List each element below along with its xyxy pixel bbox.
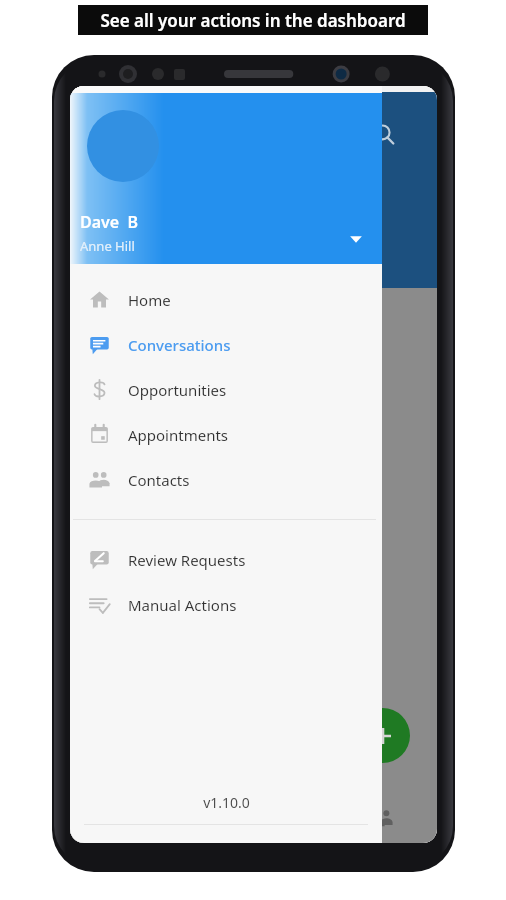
button[interactable]: Appointments [70, 412, 382, 457]
staticText: Opportunities [128, 380, 227, 400]
staticText: Review Requests [128, 550, 246, 570]
button[interactable]: Manual Actions [70, 582, 382, 627]
button[interactable]: Contacts [70, 457, 382, 502]
button[interactable]: Conversations [70, 322, 382, 367]
staticText: Contacts [128, 470, 190, 490]
button[interactable]: Home [70, 277, 382, 322]
staticText: Conversations [128, 335, 231, 355]
button[interactable]: Contacts tab [362, 798, 402, 838]
button[interactable]: Opportunities [70, 367, 382, 412]
button[interactable]: Review Requests [70, 537, 382, 582]
button[interactable]: Switch account [338, 221, 374, 257]
staticText: Anne Hill [80, 237, 135, 255]
button[interactable]: All [332, 182, 392, 226]
button[interactable]: Search [362, 112, 406, 156]
staticText: See all your actions in the dashboard [100, 9, 406, 32]
staticText: Appointments [128, 425, 229, 445]
staticText: Dave B [80, 211, 139, 233]
staticText: Manual Actions [128, 595, 237, 615]
staticText: Home [128, 290, 171, 310]
button[interactable]: Profile photo [87, 110, 159, 182]
button[interactable]: Add [355, 708, 410, 763]
staticText: v1.10.0 [203, 793, 250, 812]
